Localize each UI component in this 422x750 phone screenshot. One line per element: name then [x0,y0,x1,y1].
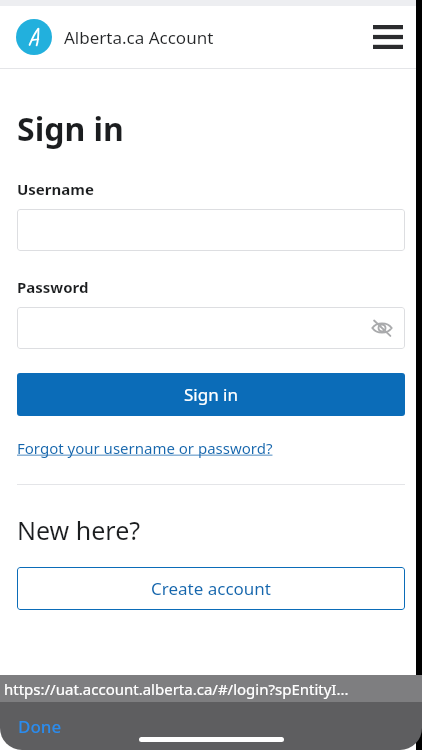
staticText: Alberta.ca Account [64,26,214,49]
button[interactable]: Done [18,715,62,738]
button[interactable]: Show password [17,307,405,349]
staticText: https://uat.account.alberta.ca/#/login?s… [4,679,349,699]
staticText: Username [17,179,94,199]
staticText: New here? [17,513,141,547]
staticText: Create account [151,577,271,600]
staticText: Done [18,715,62,738]
button[interactable]: Forgot your username or password? [17,438,273,458]
button[interactable]: Menu [362,11,414,63]
staticText: Forgot your username or password? [17,438,273,458]
button[interactable]: Sign in [17,373,405,416]
button[interactable]: Show password [365,311,399,345]
button[interactable]: https://uat.account.alberta.ca/#/login?s… [0,675,422,702]
staticText: Sign in [17,107,124,151]
staticText: Password [17,277,89,297]
button[interactable]: Create account [17,567,405,610]
button[interactable] [17,209,405,251]
staticText: Sign in [184,383,238,406]
